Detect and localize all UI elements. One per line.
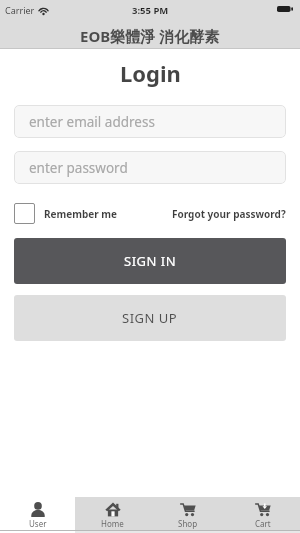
staticText: Remember me [44, 207, 118, 221]
staticText: Login [120, 58, 181, 88]
staticText: 3:55 PM [132, 4, 169, 17]
staticText: enter email address [29, 113, 155, 131]
staticText: Home [101, 518, 124, 529]
button[interactable]: Shop [150, 497, 225, 530]
button[interactable]: Cart [225, 497, 300, 530]
staticText: Carrier [5, 4, 35, 16]
staticText: Shop [178, 518, 198, 529]
button[interactable]: Home [75, 497, 150, 530]
staticText: EOB樂體淨 消化酵素 [80, 26, 220, 46]
button[interactable]: enter password [14, 151, 286, 184]
button[interactable] [14, 203, 35, 224]
staticText: User [29, 518, 47, 529]
button[interactable]: User [0, 497, 75, 530]
staticText: Cart [255, 518, 271, 529]
button[interactable]: SIGN UP [14, 295, 286, 341]
staticText: enter password [29, 159, 128, 177]
button[interactable]: enter email address [14, 105, 286, 138]
staticText: SIGN UP [122, 309, 178, 327]
button[interactable]: SIGN IN [14, 238, 286, 284]
staticText: SIGN IN [124, 252, 177, 270]
button[interactable]: Forgot your password? [172, 207, 286, 221]
